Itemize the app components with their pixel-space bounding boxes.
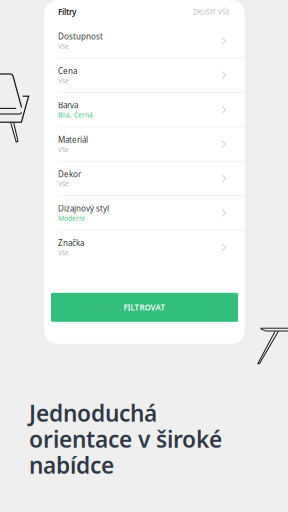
staticText: Vše xyxy=(58,248,69,257)
staticText: Jednoduchá xyxy=(29,398,157,428)
staticText: Bílá, Černá xyxy=(58,110,93,119)
button[interactable]: Barva xyxy=(44,93,245,127)
staticText: Dekor xyxy=(58,169,81,179)
button[interactable]: FILTROVAT xyxy=(51,293,238,322)
staticText: Dizajnový styl xyxy=(58,203,109,214)
button[interactable]: Dizajnový styl xyxy=(44,196,245,230)
staticText: Cena xyxy=(58,65,77,76)
staticText: Vše xyxy=(58,179,69,188)
staticText: Barva xyxy=(58,100,78,110)
staticText: Moderní xyxy=(58,214,85,223)
staticText: FILTROVAT xyxy=(123,302,165,313)
button[interactable]: Dostupnost xyxy=(44,24,245,58)
staticText: nabídce xyxy=(29,450,114,480)
staticText: Filtry xyxy=(58,7,76,17)
button[interactable]: Dekor xyxy=(44,162,245,196)
staticText: Vše xyxy=(58,42,69,51)
button[interactable]: Cena xyxy=(44,58,245,93)
button[interactable]: Značka xyxy=(44,230,245,265)
button[interactable]: Materiál xyxy=(44,127,245,162)
staticText: Vše xyxy=(58,76,69,85)
button[interactable]: ZRUŠIT VŠE xyxy=(193,8,230,16)
staticText: Dostupnost xyxy=(58,31,103,42)
staticText: Značka xyxy=(58,237,84,248)
staticText: Vše xyxy=(58,145,69,154)
staticText: orientace v široké xyxy=(29,424,222,454)
staticText: Materiál xyxy=(58,134,88,145)
staticText: ZRUŠIT VŠE xyxy=(193,8,230,16)
